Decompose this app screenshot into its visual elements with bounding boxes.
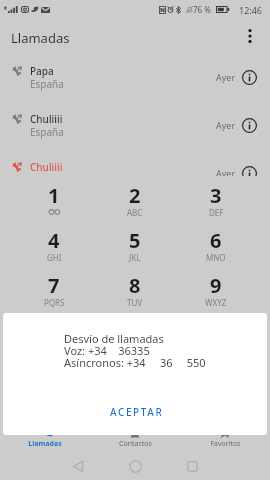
staticText: 7 (48, 272, 60, 299)
staticText: DEF (209, 207, 224, 218)
staticText: 4 (48, 227, 60, 254)
button[interactable]: Call details (241, 165, 258, 182)
button[interactable]: Chuliiii (0, 151, 270, 199)
staticText: MNO (206, 252, 226, 263)
button[interactable]: 3 (176, 176, 256, 221)
button[interactable]: 8 (95, 266, 175, 311)
button[interactable]: Chuliiii (0, 103, 270, 151)
staticText: Chuliiii (30, 112, 63, 126)
button[interactable]: More options (238, 18, 262, 54)
button[interactable]: 5 (95, 221, 175, 266)
staticText: Papa (30, 64, 54, 78)
staticText: España (30, 125, 64, 139)
staticText: TUV (127, 297, 143, 308)
button[interactable]: Recents (182, 456, 202, 476)
button[interactable]: Papa (0, 55, 270, 103)
staticText: 8 (129, 272, 141, 299)
staticText: 5 (129, 227, 141, 254)
button[interactable]: Call details (241, 69, 258, 86)
staticText: Llamadas (11, 29, 70, 47)
staticText: España (30, 77, 64, 91)
staticText: JKL (129, 252, 141, 263)
button[interactable]: Call details (241, 117, 258, 134)
staticText: Ayer (216, 119, 236, 131)
staticText: 12:46 (239, 4, 263, 16)
staticText: 3 (210, 182, 222, 209)
staticText: PQRS (44, 297, 65, 308)
staticText: 6 (210, 227, 222, 254)
button[interactable]: Back (68, 456, 88, 476)
staticText: Ayer (216, 71, 236, 83)
staticText: Favoritos (210, 439, 241, 449)
staticText: Llamadas (28, 439, 62, 449)
button[interactable]: 1 (14, 176, 94, 221)
staticText: Asíncronos: +34 36 550 (64, 355, 206, 370)
staticText: 9 (210, 272, 222, 299)
button[interactable]: Favoritos (180, 427, 270, 453)
staticText: WXYZ (205, 297, 227, 308)
staticText: 76 % (193, 4, 211, 15)
button[interactable]: ACEPTAR (102, 400, 172, 424)
button[interactable]: 7 (14, 266, 94, 311)
button[interactable]: Contactos (90, 427, 180, 453)
button[interactable]: 9 (176, 266, 256, 311)
staticText: Chuliiii (30, 160, 63, 174)
button[interactable]: 4 (14, 221, 94, 266)
button[interactable]: 2 (95, 176, 175, 221)
staticText: GHI (47, 252, 62, 263)
staticText: ACEPTAR (110, 405, 164, 419)
staticText: 2 (129, 182, 141, 209)
button[interactable]: Llamadas (0, 427, 90, 453)
button[interactable]: Home (125, 456, 145, 476)
staticText: Voz: +34 36335 (64, 343, 150, 358)
staticText: ABC (127, 207, 143, 218)
staticText: 1 (48, 182, 60, 209)
staticText: Ayer (216, 167, 236, 179)
staticText: Contactos (119, 439, 152, 449)
button[interactable]: 6 (176, 221, 256, 266)
staticText: Desvío de llamadas (64, 331, 164, 346)
